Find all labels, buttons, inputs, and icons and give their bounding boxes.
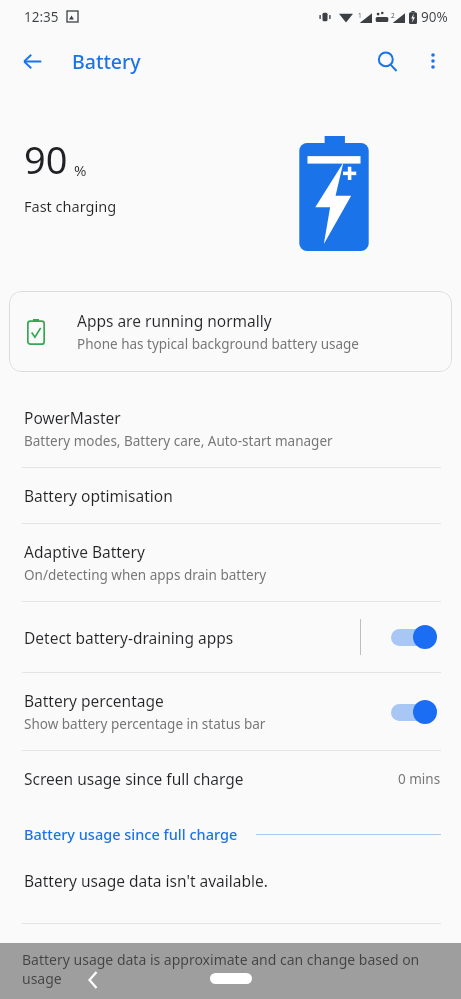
staticText: Screen usage since full charge bbox=[24, 768, 244, 789]
staticText: Detect battery-draining apps bbox=[24, 627, 234, 648]
staticText: 90 bbox=[24, 133, 68, 185]
button[interactable]: More options bbox=[411, 39, 455, 83]
staticText: % bbox=[74, 160, 87, 180]
staticText: On/detecting when apps drain battery bbox=[24, 566, 267, 584]
button[interactable]: Screen usage since full charge bbox=[0, 751, 461, 806]
staticText: Battery usage since full charge bbox=[24, 824, 238, 844]
staticText: 0 mins bbox=[398, 770, 441, 788]
staticText: Battery percentage bbox=[24, 690, 164, 711]
staticText: Show battery percentage in status bar bbox=[24, 715, 266, 733]
staticText: 12:35 bbox=[24, 8, 59, 26]
button[interactable]: Home bbox=[210, 973, 252, 984]
button[interactable]: Adaptive Battery bbox=[0, 524, 461, 601]
staticText: 90% bbox=[421, 8, 448, 26]
staticText: Apps are running normally bbox=[77, 310, 272, 331]
staticText: Battery modes, Battery care, Auto-start … bbox=[24, 432, 333, 450]
staticText: PowerMaster bbox=[24, 407, 121, 428]
staticText: 1 bbox=[358, 11, 362, 20]
button[interactable]: Search bbox=[363, 37, 411, 85]
button[interactable]: Toggle bbox=[389, 623, 441, 651]
button[interactable]: Battery optimisation bbox=[0, 468, 461, 523]
staticText: Battery optimisation bbox=[24, 485, 173, 506]
staticText: Battery usage data is approximate and ca… bbox=[22, 950, 439, 988]
button[interactable]: Detect battery-draining apps bbox=[0, 602, 461, 672]
staticText: Fast charging bbox=[24, 196, 117, 216]
staticText: Phone has typical background battery usa… bbox=[77, 335, 359, 353]
button[interactable]: PowerMaster bbox=[0, 390, 461, 467]
staticText: 2 bbox=[391, 11, 395, 20]
other: Back bbox=[88, 972, 98, 988]
button[interactable]: Battery percentage bbox=[0, 673, 461, 750]
button[interactable]: Toggle bbox=[389, 698, 441, 726]
staticText: Battery bbox=[72, 48, 141, 75]
button[interactable]: Apps are running normally bbox=[9, 291, 452, 372]
button[interactable]: Back bbox=[10, 39, 54, 83]
staticText: Battery usage data isn't available. bbox=[24, 870, 268, 891]
staticText: Adaptive Battery bbox=[24, 541, 145, 562]
